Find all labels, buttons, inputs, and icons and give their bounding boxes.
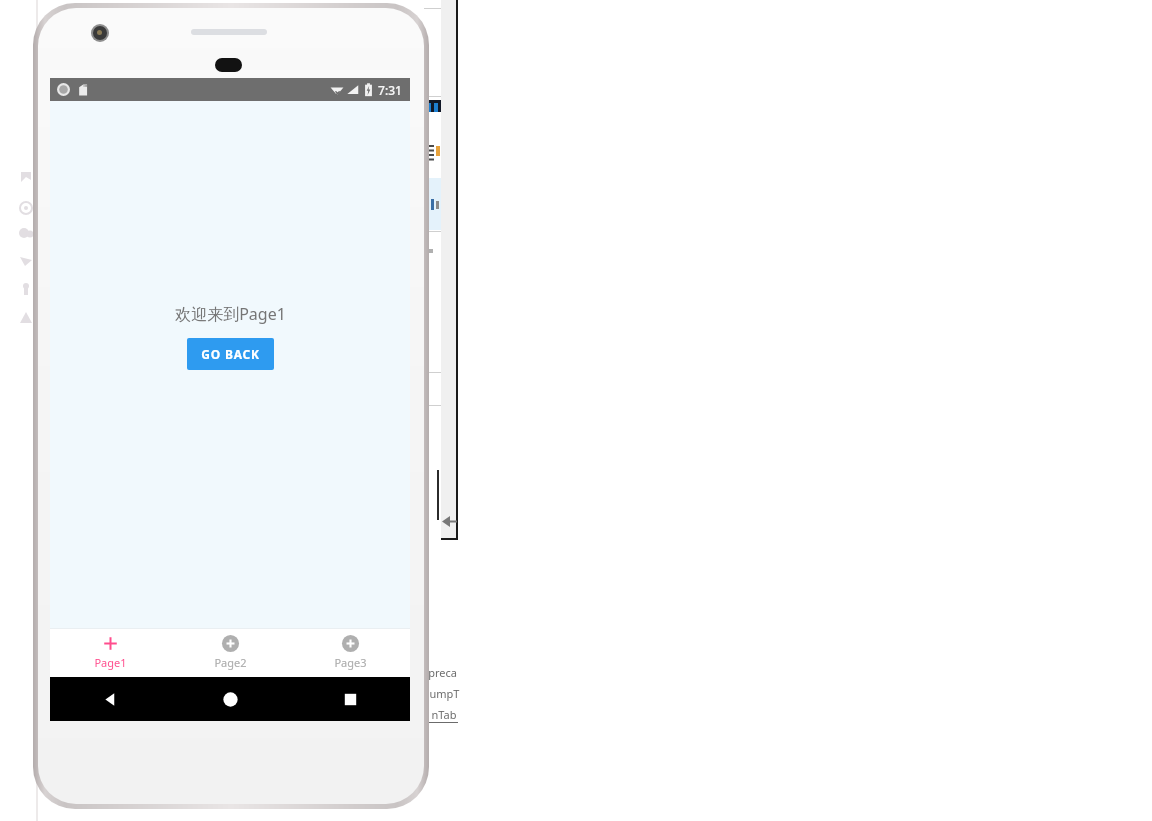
staticText: 7:31: [378, 82, 402, 98]
staticText: nTabN: [428, 707, 460, 725]
staticText: preca: [428, 665, 457, 680]
button[interactable]: Page3: [290, 628, 410, 677]
button[interactable]: Recent apps: [290, 677, 410, 721]
staticText: Page3: [334, 655, 367, 670]
staticText: GO BACK: [201, 346, 260, 362]
staticText: Page1: [94, 655, 127, 670]
staticText: umpTo: [428, 686, 460, 704]
staticText: Page2: [214, 655, 247, 670]
button[interactable]: Back: [50, 677, 170, 721]
staticText: 欢迎来到Page1: [175, 303, 286, 325]
button[interactable]: Home: [170, 677, 290, 721]
button[interactable]: Page1: [50, 628, 170, 677]
button[interactable]: Page2: [170, 628, 290, 677]
button[interactable]: GO BACK: [187, 338, 274, 370]
